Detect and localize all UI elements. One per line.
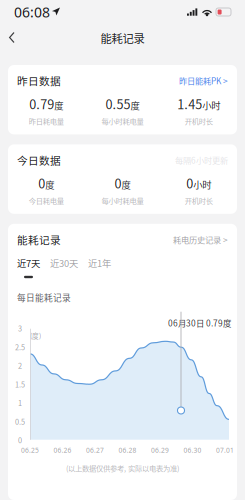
staticText: 昨日数据 <box>17 73 61 88</box>
staticText: 昨日能耗PK > <box>179 75 228 87</box>
staticText: 度 <box>45 178 54 191</box>
button[interactable]: 近30天 <box>40 256 78 270</box>
staticText: 06月30日 0.79度 <box>168 317 231 329</box>
staticText: 0 <box>38 174 45 192</box>
staticText: 07.01 <box>216 446 234 455</box>
staticText: 1.45 <box>177 94 202 113</box>
staticText: 今日耗电量 <box>29 195 64 206</box>
staticText: 1 <box>18 397 22 408</box>
staticText: 度 <box>54 98 63 112</box>
staticText: 2.5 <box>15 342 25 352</box>
staticText: 每小时耗电量 <box>101 195 143 206</box>
button[interactable]: 近1年 <box>78 256 111 270</box>
staticText: 昨日耗电量 <box>29 116 64 126</box>
button[interactable]: Back <box>0 24 27 51</box>
staticText: 度 <box>121 178 130 191</box>
staticText: (以上数据仅供参考, 实际以电表为准) <box>66 463 179 473</box>
staticText: 每隔6小时更新 <box>175 154 228 166</box>
staticText: 耗电历史记录 > <box>173 234 228 246</box>
staticText: 06.27 <box>86 446 104 455</box>
staticText: 06.28 <box>118 446 136 455</box>
staticText: 度 <box>130 98 139 112</box>
staticText: 近7天 <box>17 256 40 270</box>
button[interactable]: 每隔6小时更新 <box>175 154 228 166</box>
staticText: (度) <box>30 331 41 340</box>
staticText: 2 <box>18 360 22 371</box>
staticText: 1.5 <box>15 379 25 389</box>
staticText: 小时 <box>202 98 220 112</box>
staticText: 0.55 <box>105 94 130 113</box>
staticText: 能耗记录 <box>100 30 144 46</box>
staticText: 小时 <box>193 178 211 191</box>
staticText: 开机时长 <box>185 116 213 126</box>
staticText: 近30天 <box>50 256 78 270</box>
staticText: 3 <box>18 323 22 334</box>
staticText: 06.26 <box>53 446 71 455</box>
staticText: 能耗记录 <box>17 232 61 247</box>
staticText: 0.79 <box>29 94 54 113</box>
button[interactable]: 近7天 <box>17 256 40 278</box>
staticText: 0.5 <box>15 416 25 427</box>
staticText: 0 <box>18 435 22 445</box>
staticText: 开机时长 <box>185 195 213 206</box>
staticText: 每日能耗记录 <box>17 291 71 304</box>
staticText: 近1年 <box>88 256 111 270</box>
staticText: 每小时耗电量 <box>101 116 143 126</box>
staticText: 0 <box>114 174 121 192</box>
staticText: 06.30 <box>183 446 201 455</box>
staticText: 06:08 <box>14 2 50 22</box>
staticText: 今日数据 <box>17 152 61 168</box>
staticText: 06.29 <box>151 446 169 455</box>
staticText: 0 <box>186 174 193 192</box>
staticText: 06.25 <box>21 446 39 455</box>
button[interactable]: 昨日能耗PK > <box>179 75 228 87</box>
button[interactable]: 耗电历史记录 > <box>173 234 228 246</box>
